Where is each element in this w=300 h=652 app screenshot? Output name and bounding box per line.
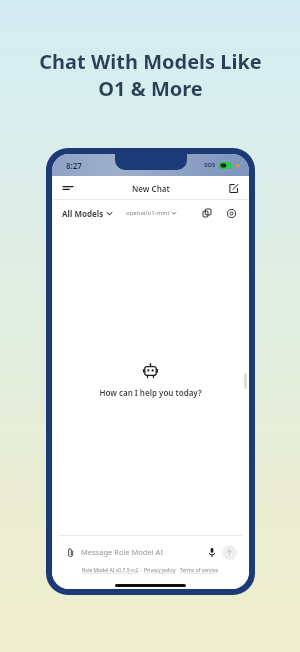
staticText: SOS [204,161,216,169]
button[interactable]: Attach file [64,546,77,559]
button[interactable]: openai/o1-mini [126,209,176,217]
staticText: All Models [62,208,104,219]
staticText: Privacy policy [144,567,176,574]
button[interactable]: Menu [60,180,76,196]
staticText: Chat With Models Like [39,48,262,75]
staticText: New Chat [132,183,170,194]
button[interactable]: All Models [62,208,112,219]
button[interactable]: Voice input [205,545,219,559]
button[interactable]: New chat [225,180,241,196]
staticText: Role Model AI v0.7.5-rc2 [82,567,139,574]
button[interactable]: Role Model AI v0.7.5-rc2 [82,567,139,574]
staticText: 8:27 [66,160,82,171]
button[interactable]: Send [222,545,237,560]
button[interactable]: Copy [199,205,215,221]
staticText: openai/o1-mini [126,209,169,217]
staticText: Terms of service [180,567,219,574]
staticText: O1 & More [98,75,203,102]
button[interactable]: Settings [223,205,239,221]
staticText: Message Role Model AI [81,547,163,557]
staticText: How can I help you today? [99,387,202,398]
button[interactable]: Attach file [59,541,242,563]
button[interactable]: Terms of service [180,567,219,574]
button[interactable]: Privacy policy [144,567,176,574]
staticText: - [139,567,144,574]
